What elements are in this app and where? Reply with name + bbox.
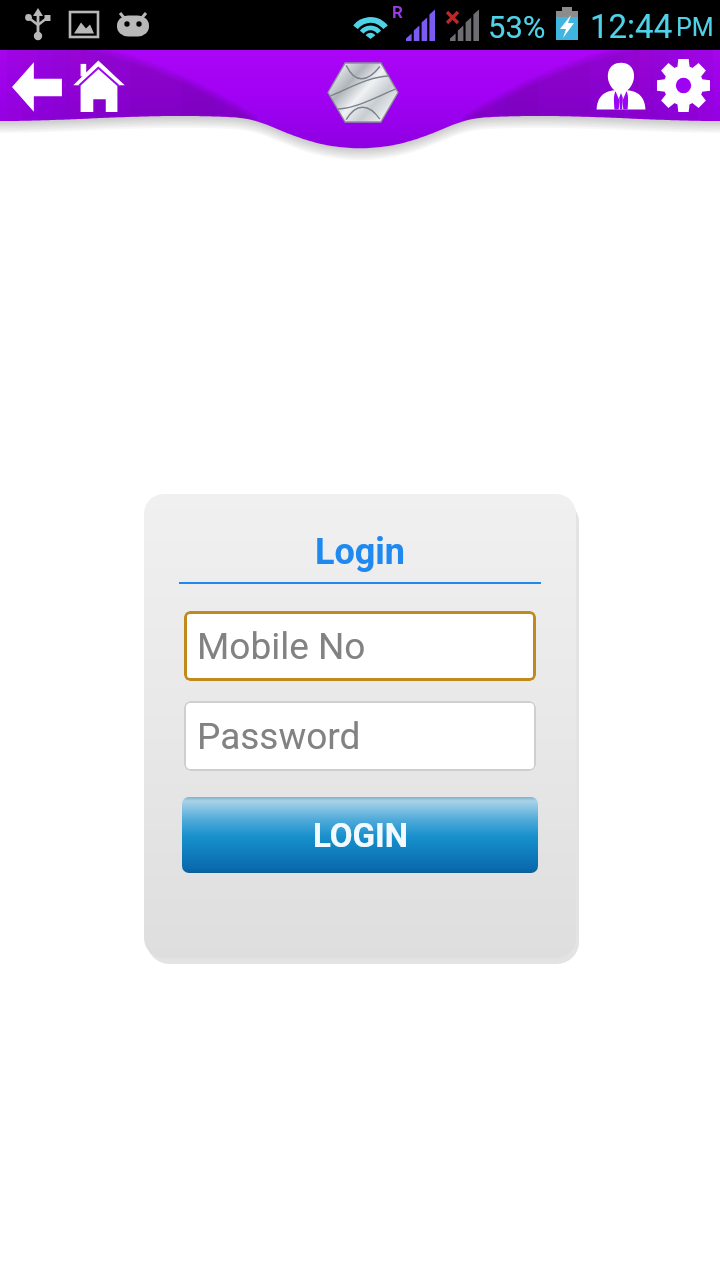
button[interactable]: Home <box>73 60 125 112</box>
button[interactable]: Mobile No <box>184 611 536 681</box>
staticText: PM <box>676 13 714 42</box>
button[interactable]: LOGIN <box>182 797 538 873</box>
button[interactable]: App logo <box>328 63 398 122</box>
button[interactable]: Back <box>12 62 64 112</box>
staticText: R <box>392 2 403 22</box>
staticText: Login <box>144 531 576 573</box>
staticText: 12:44 <box>590 7 673 46</box>
button[interactable]: Password <box>184 701 536 771</box>
staticText: Mobile No <box>197 625 366 668</box>
button[interactable]: Profile <box>595 60 647 111</box>
staticText: LOGIN <box>313 816 408 855</box>
staticText: 53% <box>488 9 546 45</box>
button[interactable]: Settings <box>657 59 710 112</box>
staticText: Password <box>197 715 361 758</box>
